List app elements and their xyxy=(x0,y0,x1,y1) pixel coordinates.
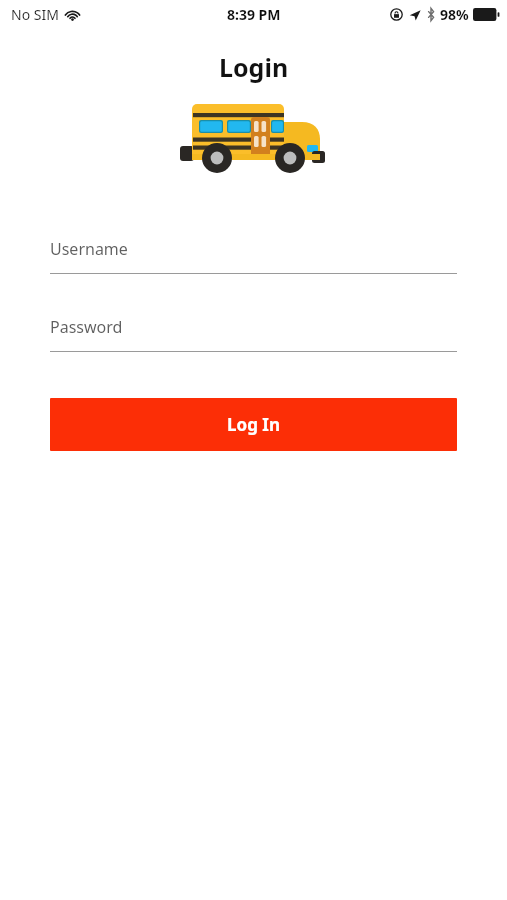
staticText: Log In xyxy=(227,413,280,436)
staticText: Username xyxy=(50,238,128,260)
staticText: Login xyxy=(219,50,289,84)
button[interactable]: Log In xyxy=(50,398,457,451)
staticText: No SIM xyxy=(11,5,59,24)
button[interactable]: Password xyxy=(50,311,457,352)
staticText: 8:39 PM xyxy=(227,5,281,24)
staticText: Password xyxy=(50,316,123,338)
button[interactable]: Username xyxy=(50,233,457,274)
staticText: 98% xyxy=(440,5,469,24)
